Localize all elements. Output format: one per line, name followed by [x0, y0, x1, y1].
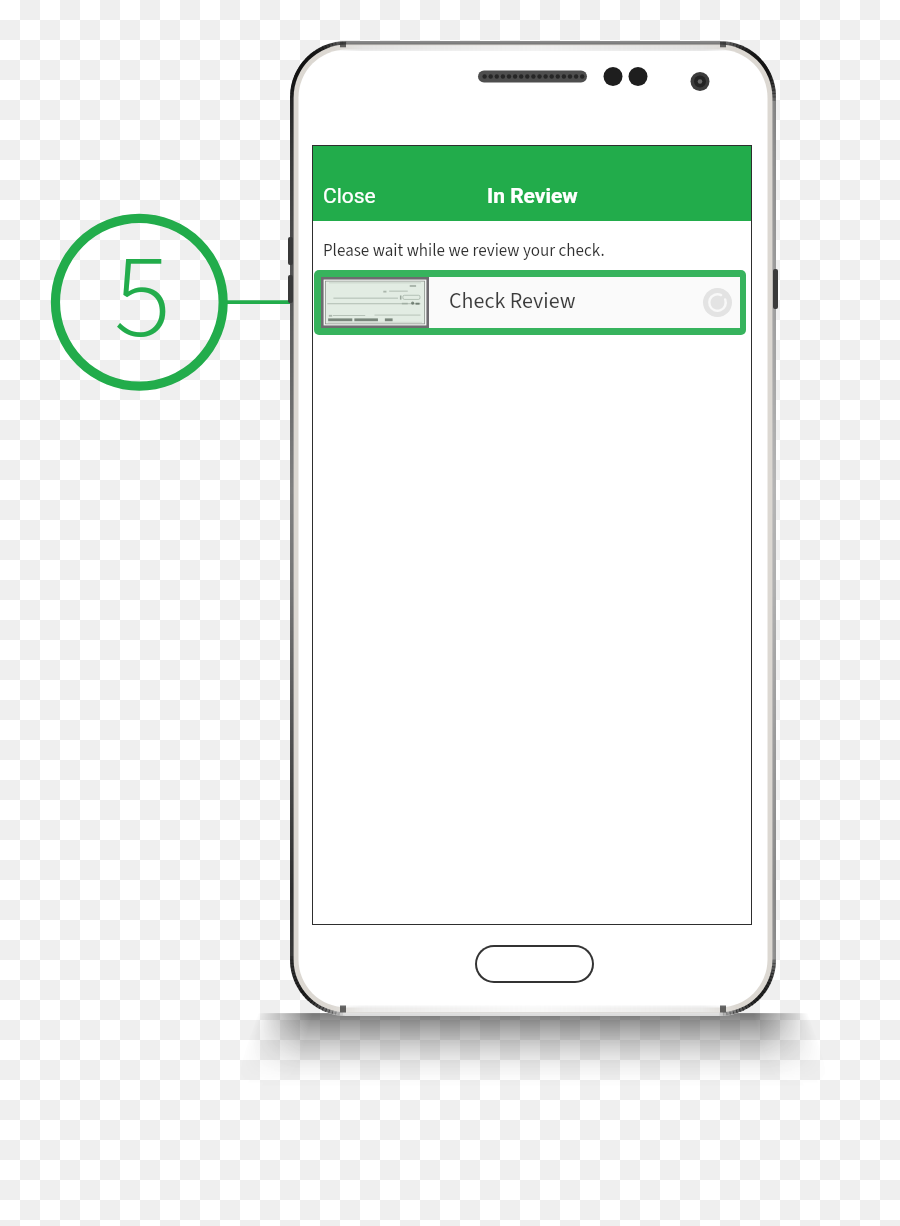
other: Loading	[703, 288, 732, 317]
staticText: 5	[114, 214, 172, 383]
staticText: In Review	[487, 184, 578, 209]
button[interactable]: Close	[317, 181, 382, 212]
button[interactable]: Check Review	[314, 270, 746, 335]
staticText: Close	[323, 184, 376, 209]
staticText: Please wait while we review your check.	[323, 239, 605, 263]
staticText: Check Review	[449, 285, 576, 316]
